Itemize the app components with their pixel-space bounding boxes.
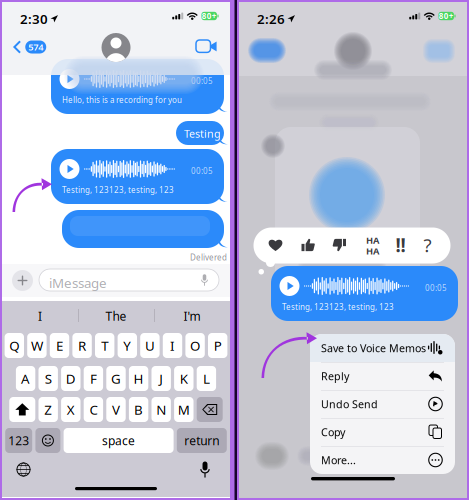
staticText: J	[159, 370, 163, 387]
button[interactable]: Exclamation	[395, 233, 405, 257]
button[interactable]: E	[50, 333, 69, 358]
staticText: Delivered	[190, 252, 227, 261]
button[interactable]: G	[106, 366, 126, 391]
staticText: H	[134, 370, 144, 387]
button[interactable]: S	[38, 366, 58, 391]
staticText: B	[134, 401, 143, 418]
button[interactable]: Contact	[101, 33, 130, 62]
button[interactable]: Z	[38, 397, 58, 422]
staticText: I	[38, 308, 42, 324]
button[interactable]: I	[2, 302, 78, 330]
button[interactable]: L	[197, 366, 216, 391]
button[interactable]: B	[129, 397, 148, 422]
staticText: Testing, 123123, testing, 123	[282, 301, 394, 312]
button[interactable]: Thumbs down	[332, 238, 346, 251]
button[interactable]: space	[64, 428, 174, 453]
button[interactable]: iMessage	[39, 269, 219, 291]
button[interactable]: X	[61, 397, 80, 422]
staticText: Testing, 123123, testing, 123	[62, 184, 174, 195]
staticText: I'm	[183, 308, 200, 324]
button[interactable]: Undo Send	[310, 390, 455, 418]
staticText: Q	[9, 337, 19, 354]
button[interactable]: Save to Voice Memos	[310, 334, 455, 362]
staticText: 2:30	[20, 10, 48, 28]
button[interactable]: Thumbs up	[301, 238, 315, 251]
staticText: X	[67, 401, 75, 418]
staticText: Reply	[321, 369, 349, 383]
button[interactable]: Add attachment	[12, 270, 33, 291]
staticText: HA	[366, 234, 379, 246]
button[interactable]: I	[163, 333, 182, 358]
button[interactable]: Y	[118, 333, 137, 358]
button[interactable]: Q	[5, 333, 24, 358]
staticText: 80+	[202, 11, 217, 21]
button[interactable]: 123	[5, 428, 32, 453]
button[interactable]: H	[129, 366, 148, 391]
staticText: 123	[8, 432, 29, 448]
staticText: D	[66, 370, 76, 387]
staticText: E	[56, 337, 63, 354]
button[interactable]: Dictate	[200, 461, 210, 477]
staticText: L	[203, 370, 210, 387]
staticText: Hello, this is a recording for you	[62, 94, 182, 105]
staticText: Testing	[184, 126, 221, 139]
staticText: M	[178, 401, 190, 418]
staticText: A	[21, 370, 30, 387]
button[interactable]: T	[95, 333, 114, 358]
staticText: Copy	[321, 425, 345, 439]
staticText: F	[90, 370, 97, 387]
staticText: K	[180, 370, 188, 387]
button[interactable]: A	[16, 366, 35, 391]
staticText: Undo Send	[321, 397, 378, 411]
staticText: G	[111, 370, 121, 387]
button[interactable]: FaceTime video call	[196, 38, 217, 54]
staticText: HA	[366, 245, 379, 257]
button[interactable]: Love	[268, 238, 282, 251]
staticText: return	[184, 432, 219, 448]
staticText: N	[156, 401, 166, 418]
staticText: Z	[44, 401, 52, 418]
staticText: 80+	[439, 11, 454, 21]
button[interactable]: The	[78, 302, 154, 330]
button[interactable]: Question mark	[423, 233, 431, 257]
button[interactable]: Haha	[366, 234, 379, 257]
button[interactable]: return	[177, 428, 227, 453]
button[interactable]: N	[151, 397, 171, 422]
button[interactable]: Reply	[310, 362, 455, 390]
button[interactable]: V	[106, 397, 126, 422]
staticText: U	[145, 337, 155, 354]
staticText: R	[78, 337, 86, 354]
button[interactable]: Copy	[310, 418, 455, 446]
button[interactable]: Emoji	[35, 428, 60, 453]
button[interactable]: I'm	[154, 302, 230, 330]
button[interactable]: Shift	[9, 397, 35, 422]
staticText: space	[102, 432, 135, 448]
staticText: C	[89, 401, 97, 418]
staticText: 574	[28, 41, 43, 53]
button[interactable]: M	[174, 397, 193, 422]
staticText: The	[105, 308, 126, 324]
button[interactable]: R	[72, 333, 92, 358]
button[interactable]: O	[185, 333, 205, 358]
staticText: 2:26	[257, 10, 285, 28]
button[interactable]: Delete	[197, 397, 223, 422]
button[interactable]: K	[174, 366, 193, 391]
staticText: !!	[395, 233, 405, 257]
button[interactable]: P	[208, 333, 227, 358]
button[interactable]: U	[140, 333, 160, 358]
staticText: Save to Voice Memos	[321, 341, 426, 355]
button[interactable]: More...	[310, 446, 455, 474]
button[interactable]: J	[151, 366, 171, 391]
button[interactable]: 574	[12, 40, 46, 54]
button[interactable]: F	[84, 366, 103, 391]
staticText: I	[170, 337, 175, 354]
staticText: O	[190, 337, 200, 354]
staticText: iMessage	[49, 274, 107, 286]
staticText: 00:05	[425, 282, 447, 293]
staticText: S	[45, 370, 52, 387]
staticText: ?	[423, 233, 431, 257]
button[interactable]: Switch keyboard	[16, 462, 31, 477]
button[interactable]: D	[61, 366, 80, 391]
button[interactable]: C	[84, 397, 103, 422]
button[interactable]: W	[27, 333, 47, 358]
